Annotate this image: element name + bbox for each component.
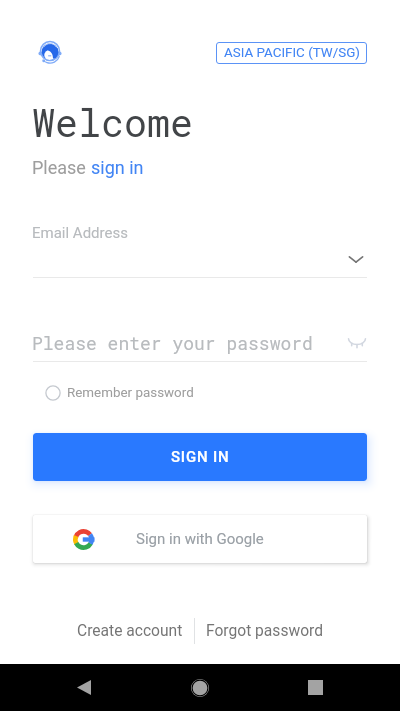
button[interactable]: Remember password bbox=[45, 385, 194, 401]
button[interactable]: Sign in with Google bbox=[33, 515, 367, 563]
staticText: Please enter your password bbox=[32, 331, 313, 355]
staticText: Email Address bbox=[32, 224, 128, 242]
staticText: ASIA PACIFIC (TW/SG) bbox=[224, 45, 360, 61]
button[interactable]: Create account bbox=[77, 622, 183, 640]
staticText: Welcome bbox=[32, 97, 193, 148]
button[interactable]: Recent apps bbox=[282, 664, 349, 711]
button[interactable]: Show password bbox=[346, 330, 368, 352]
staticText: Sign in with Google bbox=[136, 530, 264, 548]
button[interactable]: Back bbox=[50, 664, 117, 711]
staticText: Please bbox=[32, 157, 91, 178]
button[interactable]: ASIA PACIFIC (TW/SG) bbox=[216, 42, 367, 64]
button[interactable]: Home bbox=[166, 664, 233, 711]
button[interactable]: sign in bbox=[91, 157, 144, 178]
staticText: SIGN IN bbox=[171, 448, 230, 466]
staticText: Remember password bbox=[67, 385, 194, 401]
button[interactable]: SIGN IN bbox=[33, 433, 367, 481]
button[interactable]: Support agent logo bbox=[38, 40, 62, 64]
button[interactable]: Show email suggestions bbox=[345, 248, 367, 270]
button[interactable]: Forgot password bbox=[206, 622, 323, 640]
